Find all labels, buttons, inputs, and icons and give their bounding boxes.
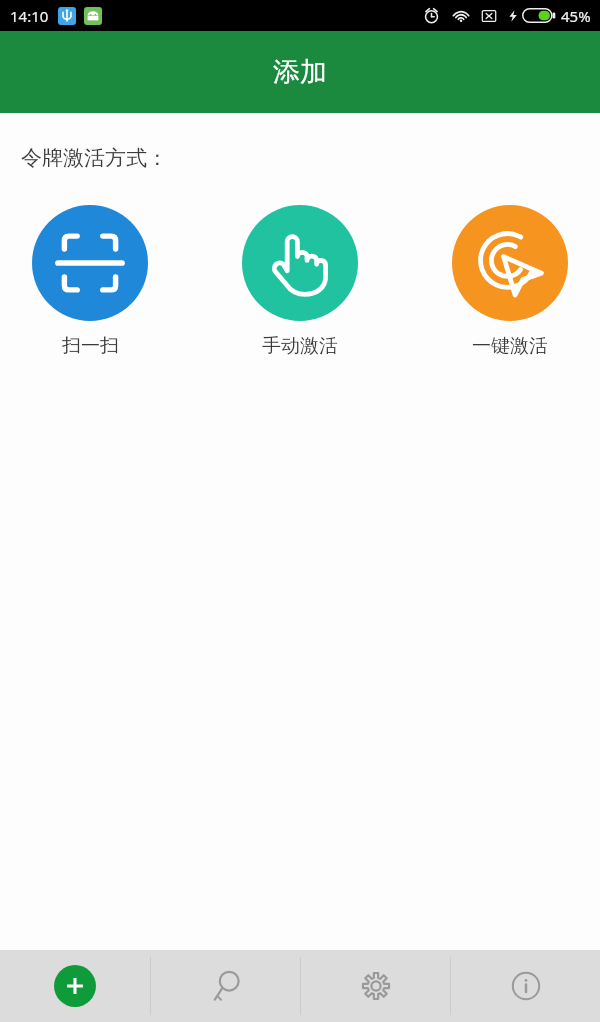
button[interactable]: Search	[151, 950, 300, 1022]
staticText: 14:10	[10, 6, 49, 26]
staticText: 45%	[561, 6, 591, 26]
button[interactable]: 扫一扫	[17, 205, 163, 358]
button[interactable]: Add	[0, 950, 150, 1022]
staticText: 扫一扫	[62, 334, 119, 358]
button[interactable]: 一键激活	[437, 205, 583, 358]
button[interactable]: Info	[451, 950, 600, 1022]
staticText: 手动激活	[262, 334, 338, 358]
staticText: 添加	[273, 55, 327, 89]
staticText: 一键激活	[472, 334, 548, 358]
button[interactable]: Settings	[301, 950, 450, 1022]
button[interactable]: 手动激活	[227, 205, 373, 358]
staticText: 令牌激活方式：	[21, 145, 168, 171]
